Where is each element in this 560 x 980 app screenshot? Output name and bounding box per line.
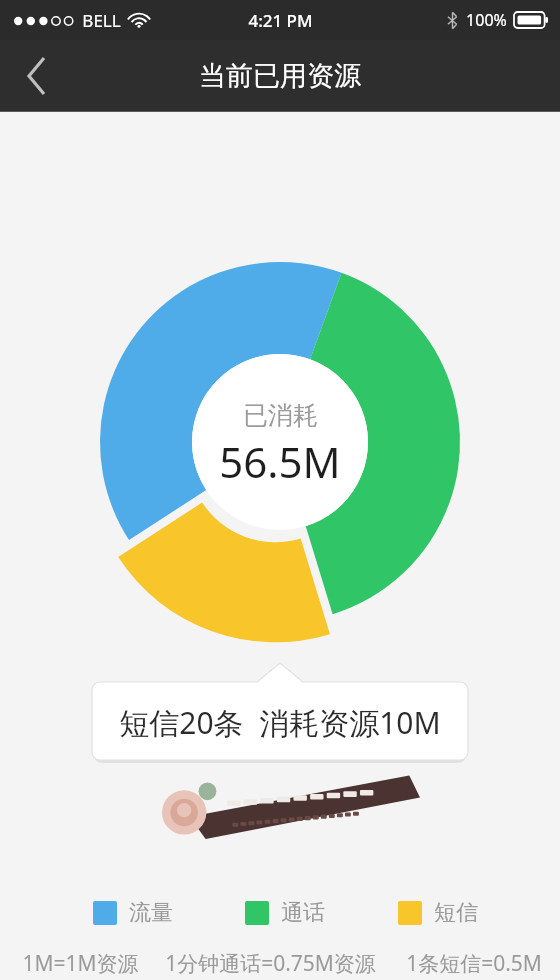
staticText: 通话 [281,899,325,927]
staticText: 流量 [129,899,173,927]
staticText: 100% [466,9,507,31]
staticText: 短信20条 消耗资源10M [119,702,441,743]
button[interactable]: 通话 [245,895,325,931]
button[interactable]: 短信 [398,895,478,931]
staticText: 已消耗 [243,400,318,431]
staticText: 56.5M [219,433,341,490]
staticText: 当前已用资源 [199,59,361,93]
staticText: BELL [82,9,121,32]
staticText: 4:21 PM [248,9,313,32]
staticText: 1M=1M资源 [22,949,139,978]
staticText: 1分钟通话=0.75M资源 [165,949,376,978]
button[interactable]: 短信20条 消耗资源10M [92,682,468,762]
button[interactable]: 流量 [93,895,173,931]
staticText: 1条短信=0.5M资源 [398,949,550,978]
staticText: 短信 [434,899,478,927]
button[interactable]: Back [0,40,74,112]
